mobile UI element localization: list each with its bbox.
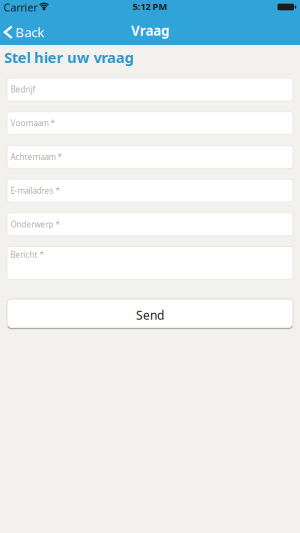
button[interactable]: Bericht * bbox=[7, 246, 293, 279]
button[interactable]: Voornaam * bbox=[7, 112, 293, 135]
button[interactable]: Bedrijf bbox=[7, 78, 293, 101]
staticText: E-mailadres * bbox=[10, 185, 59, 196]
staticText: Back bbox=[15, 23, 44, 41]
staticText: Bedrijf bbox=[10, 84, 35, 95]
staticText: Voornaam * bbox=[10, 118, 54, 128]
staticText: Stel hier uw vraag bbox=[4, 47, 134, 67]
staticText: Achternaam * bbox=[10, 152, 61, 162]
button[interactable]: Achternaam * bbox=[7, 145, 293, 168]
staticText: Carrier bbox=[3, 0, 37, 14]
button[interactable]: Back bbox=[1, 19, 48, 45]
staticText: 5:12 PM bbox=[132, 0, 167, 13]
staticText: Bericht * bbox=[10, 249, 43, 260]
button[interactable]: Onderwerp * bbox=[7, 213, 293, 236]
staticText: Vraag bbox=[131, 22, 169, 39]
staticText: Send bbox=[136, 307, 164, 323]
staticText: Onderwerp * bbox=[10, 219, 59, 230]
button[interactable]: Send bbox=[7, 299, 293, 329]
button[interactable]: E-mailadres * bbox=[7, 179, 293, 202]
